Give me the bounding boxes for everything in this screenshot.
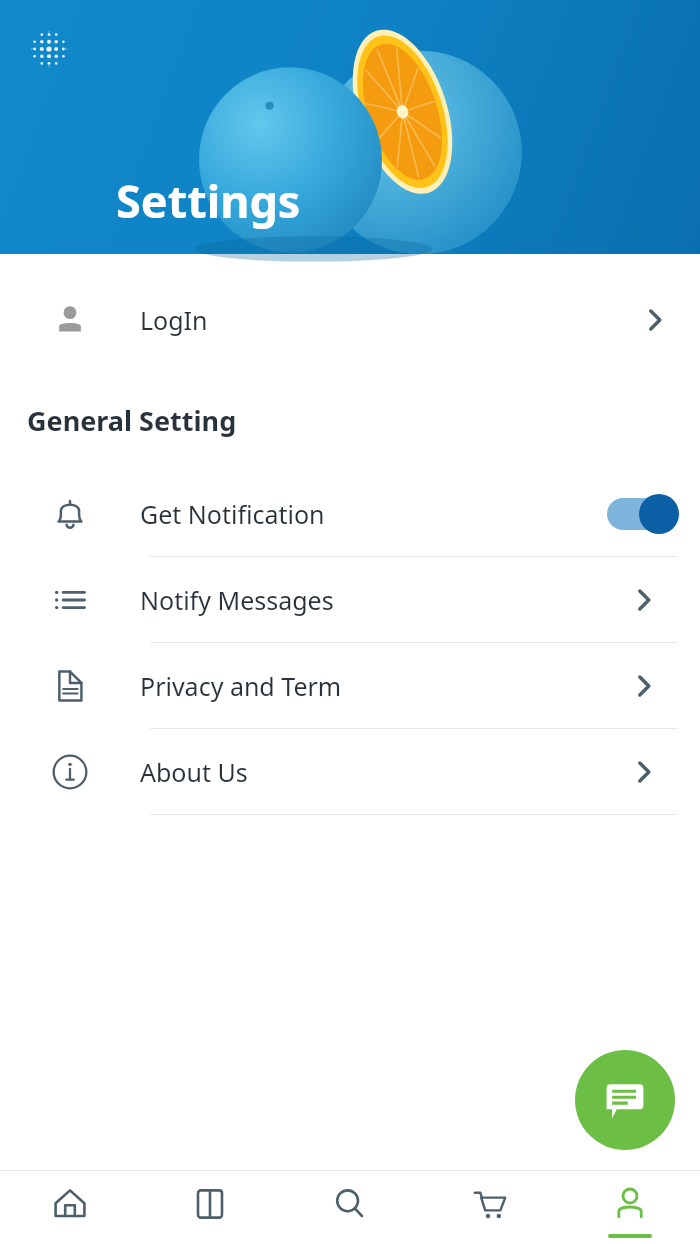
- staticText: Get Notification: [140, 497, 325, 531]
- staticText: LogIn: [140, 303, 208, 337]
- other: Logo: [31, 31, 67, 67]
- button[interactable]: LogIn: [0, 292, 700, 348]
- other: Open: [640, 305, 670, 335]
- button[interactable]: Home: [0, 1171, 140, 1244]
- staticText: Privacy and Term: [140, 669, 342, 703]
- button[interactable]: Library: [140, 1171, 280, 1244]
- button[interactable]: Get Notification: [0, 471, 700, 557]
- button[interactable]: Notify Messages: [0, 557, 700, 643]
- button[interactable]: Privacy and Term: [0, 643, 700, 729]
- button[interactable]: Cart: [420, 1171, 560, 1244]
- button[interactable]: Get Notification toggle: [605, 494, 683, 534]
- other: Open: [629, 585, 659, 615]
- staticText: General Setting: [27, 402, 237, 439]
- button[interactable]: About Us: [0, 729, 700, 815]
- other: Open: [629, 671, 659, 701]
- other: Open: [629, 757, 659, 787]
- button[interactable]: New message: [575, 1050, 675, 1150]
- staticText: Notify Messages: [140, 583, 334, 617]
- staticText: Settings: [116, 170, 301, 231]
- button[interactable]: Profile: [560, 1171, 700, 1244]
- staticText: About Us: [140, 755, 248, 789]
- button[interactable]: Search: [280, 1171, 420, 1244]
